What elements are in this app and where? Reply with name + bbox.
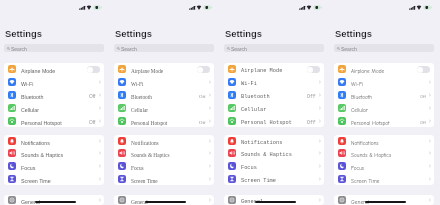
button[interactable]: Notifications (114, 135, 214, 147)
button[interactable]: Search (334, 44, 434, 52)
button[interactable]: Airplane Mode (224, 63, 324, 75)
staticText: Sounds & Haptics (351, 152, 392, 158)
staticText: Off (307, 120, 316, 125)
button[interactable]: Screen Time (114, 172, 214, 185)
button[interactable]: Airplane Mode (114, 63, 214, 75)
button[interactable]: Bluetooth (224, 88, 324, 101)
button[interactable]: Search (224, 44, 324, 52)
button[interactable]: Wi-Fi (224, 75, 324, 88)
button[interactable]: Screen Time (224, 172, 324, 185)
staticText: Screen Time (21, 178, 51, 184)
staticText: Off (199, 94, 206, 99)
staticText: General (131, 199, 148, 205)
button[interactable]: Screen Time (334, 172, 434, 185)
button[interactable]: Sounds & Haptics (224, 147, 324, 159)
staticText: Settings (335, 28, 373, 39)
staticText: Off (199, 120, 206, 125)
staticText: Bluetooth (131, 94, 152, 100)
button[interactable]: General (4, 195, 104, 205)
button[interactable]: Toggle Airplane Mode (197, 66, 210, 73)
staticText: Off (420, 120, 426, 126)
staticText: Search (341, 46, 357, 52)
staticText: Airplane Mode (351, 68, 385, 74)
button[interactable]: Personal Hotspot (224, 114, 324, 127)
staticText: Personal Hotspot (241, 120, 292, 126)
button[interactable]: Toggle Airplane Mode (307, 66, 320, 73)
staticText: Notifications (131, 140, 159, 146)
staticText: Airplane Mode (241, 68, 283, 74)
staticText: Bluetooth (351, 94, 373, 100)
staticText: Bluetooth (241, 94, 270, 100)
staticText: Wi-Fi (21, 81, 34, 87)
staticText: General (241, 199, 264, 205)
staticText: Screen Time (131, 178, 158, 184)
button[interactable]: General (224, 195, 324, 205)
button[interactable]: Airplane Mode (4, 63, 104, 75)
button[interactable]: General (334, 195, 434, 205)
staticText: Search (121, 46, 137, 52)
staticText: General (21, 199, 40, 205)
staticText: Settings (5, 28, 43, 39)
staticText: Notifications (241, 140, 283, 146)
staticText: Screen Time (241, 178, 276, 184)
button[interactable]: Search (114, 44, 214, 52)
staticText: Cellular (21, 107, 39, 113)
staticText: Wi-Fi (241, 81, 257, 87)
staticText: Settings (225, 28, 263, 39)
button[interactable]: Personal Hotspot (114, 114, 214, 127)
staticText: Cellular (351, 107, 368, 113)
staticText: Personal Hotspot (351, 120, 390, 126)
staticText: Off (307, 94, 316, 99)
button[interactable]: Bluetooth (114, 88, 214, 101)
staticText: Cellular (131, 107, 149, 113)
button[interactable]: General (114, 195, 214, 205)
staticText: Wi-Fi (351, 81, 364, 87)
button[interactable]: Focus (334, 159, 434, 172)
button[interactable]: Sounds & Haptics (4, 147, 104, 159)
button[interactable]: Bluetooth (4, 88, 104, 101)
button[interactable]: Cellular (114, 101, 214, 114)
staticText: Search (11, 46, 27, 52)
staticText: Focus (131, 165, 144, 171)
button[interactable]: Toggle Airplane Mode (417, 66, 430, 73)
staticText: Bluetooth (21, 94, 44, 100)
staticText: Sounds & Haptics (21, 152, 64, 158)
staticText: Focus (241, 165, 257, 171)
staticText: Personal Hotspot (21, 120, 62, 126)
staticText: Focus (21, 165, 36, 171)
button[interactable]: Bluetooth (334, 88, 434, 101)
staticText: Airplane Mode (131, 68, 164, 74)
button[interactable]: Personal Hotspot (4, 114, 104, 127)
staticText: Personal Hotspot (131, 120, 168, 126)
staticText: Screen Time (351, 178, 380, 184)
button[interactable]: Cellular (4, 101, 104, 114)
staticText: Off (89, 94, 96, 99)
button[interactable]: Notifications (224, 135, 324, 147)
button[interactable]: Cellular (334, 101, 434, 114)
button[interactable]: Wi-Fi (114, 75, 214, 88)
staticText: Wi-Fi (131, 81, 144, 87)
staticText: Notifications (21, 140, 50, 146)
button[interactable]: Airplane Mode (334, 63, 434, 75)
button[interactable]: Wi-Fi (334, 75, 434, 88)
button[interactable]: Screen Time (4, 172, 104, 185)
button[interactable]: Focus (4, 159, 104, 172)
button[interactable]: Search (4, 44, 104, 52)
staticText: Focus (351, 165, 365, 171)
staticText: Off (89, 120, 96, 125)
staticText: Cellular (241, 107, 267, 113)
staticText: General (351, 199, 369, 205)
button[interactable]: Notifications (334, 135, 434, 147)
button[interactable]: Focus (224, 159, 324, 172)
button[interactable]: Focus (114, 159, 214, 172)
staticText: Sounds & Haptics (131, 152, 170, 158)
staticText: Search (231, 46, 247, 52)
button[interactable]: Wi-Fi (4, 75, 104, 88)
button[interactable]: Personal Hotspot (334, 114, 434, 127)
button[interactable]: Sounds & Haptics (334, 147, 434, 159)
button[interactable]: Sounds & Haptics (114, 147, 214, 159)
staticText: Airplane Mode (21, 68, 56, 74)
button[interactable]: Toggle Airplane Mode (87, 66, 100, 73)
button[interactable]: Notifications (4, 135, 104, 147)
button[interactable]: Cellular (224, 101, 324, 114)
